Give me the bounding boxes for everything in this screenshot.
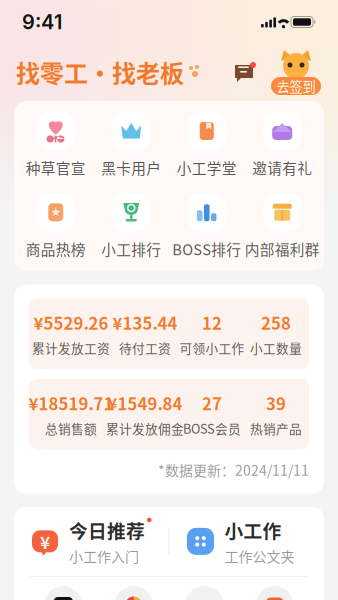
button[interactable]: ¥ — [30, 517, 168, 566]
staticText: ¥1549.84 — [107, 391, 182, 415]
button[interactable]: 邀请有礼 — [244, 112, 320, 178]
button[interactable]: 小工学堂 — [169, 112, 244, 178]
staticText: 商品热榜 — [26, 238, 86, 259]
button[interactable]: 种草官宣 — [18, 112, 93, 178]
button[interactable]: 小工作 — [185, 517, 308, 566]
button[interactable]: Check in — [260, 49, 322, 95]
button[interactable]: 黑卡用户 — [93, 112, 169, 178]
staticText: 工作公文夹 — [224, 546, 294, 566]
staticText: 小工排行 — [101, 238, 161, 259]
button[interactable]: App shortcut — [98, 586, 169, 600]
staticText: 可领小工作 — [179, 339, 244, 357]
staticText: 今日推荐 — [69, 517, 145, 544]
staticText: 找零工·找老板 — [16, 55, 184, 89]
staticText: 12 — [202, 310, 222, 335]
staticText: ¥ — [40, 529, 50, 554]
staticText: ¥5529.26 — [33, 310, 108, 335]
staticText: 累计发放工资 — [32, 339, 110, 357]
staticText: 种草官宣 — [26, 157, 86, 178]
button[interactable]: 内部福利群 — [244, 193, 320, 259]
staticText: 黑卡用户 — [101, 157, 161, 178]
staticText: *数据更新：2024/11/11 — [158, 459, 309, 480]
staticText: 小工作 — [224, 517, 281, 544]
staticText: 小工作入门 — [69, 546, 139, 566]
button[interactable]: BOSS排行 — [169, 193, 244, 259]
staticText: 待付工资 — [119, 339, 171, 357]
staticText: 39 — [266, 391, 286, 415]
staticText: 内部福利群 — [245, 238, 320, 259]
button[interactable]: 商品热榜 — [18, 193, 93, 259]
staticText: 小工数量 — [250, 339, 302, 357]
staticText: BOSS会员 — [183, 419, 241, 437]
button[interactable]: App shortcut — [169, 586, 239, 600]
button[interactable]: App shortcut — [239, 586, 310, 600]
staticText: ¥135.44 — [112, 310, 177, 335]
staticText: 邀请有礼 — [252, 157, 312, 178]
staticText: 去签到 — [276, 76, 315, 96]
staticText: 小工学堂 — [177, 157, 237, 178]
staticText: 27 — [202, 391, 222, 415]
staticText: 累计发放佣金 — [106, 419, 184, 437]
button[interactable]: App shortcut — [28, 586, 98, 600]
staticText: BOSS排行 — [172, 238, 241, 259]
staticText: 热销产品 — [250, 419, 302, 437]
button[interactable]: Messages — [228, 60, 260, 84]
staticText: 258 — [261, 310, 291, 335]
staticText: 总销售额 — [45, 419, 97, 437]
staticText: ¥18519.71 — [28, 391, 113, 415]
staticText: 9:41 — [22, 10, 62, 34]
button[interactable]: 小工排行 — [93, 193, 169, 259]
